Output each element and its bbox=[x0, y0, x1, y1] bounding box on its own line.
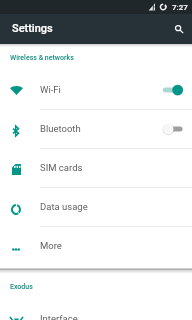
staticText: Wireless & networks bbox=[10, 54, 74, 62]
button[interactable]: Wi-Fi bbox=[0, 71, 192, 110]
staticText: Data usage bbox=[40, 201, 88, 212]
staticText: Settings bbox=[12, 22, 53, 35]
staticText: Exodus bbox=[10, 283, 33, 291]
button[interactable]: More bbox=[0, 227, 192, 266]
button[interactable]: Bluetooth bbox=[0, 110, 192, 149]
button[interactable]: Interface bbox=[0, 300, 192, 320]
staticText: Bluetooth bbox=[40, 123, 81, 134]
staticText: Wi-Fi bbox=[40, 84, 61, 95]
button[interactable]: Data usage bbox=[0, 188, 192, 227]
button[interactable]: SIM cards bbox=[0, 149, 192, 188]
staticText: More bbox=[40, 240, 62, 251]
staticText: Interface bbox=[40, 313, 78, 320]
staticText: 7:27 bbox=[172, 3, 188, 12]
staticText: SIM cards bbox=[40, 162, 83, 173]
button[interactable]: Search bbox=[166, 16, 192, 42]
